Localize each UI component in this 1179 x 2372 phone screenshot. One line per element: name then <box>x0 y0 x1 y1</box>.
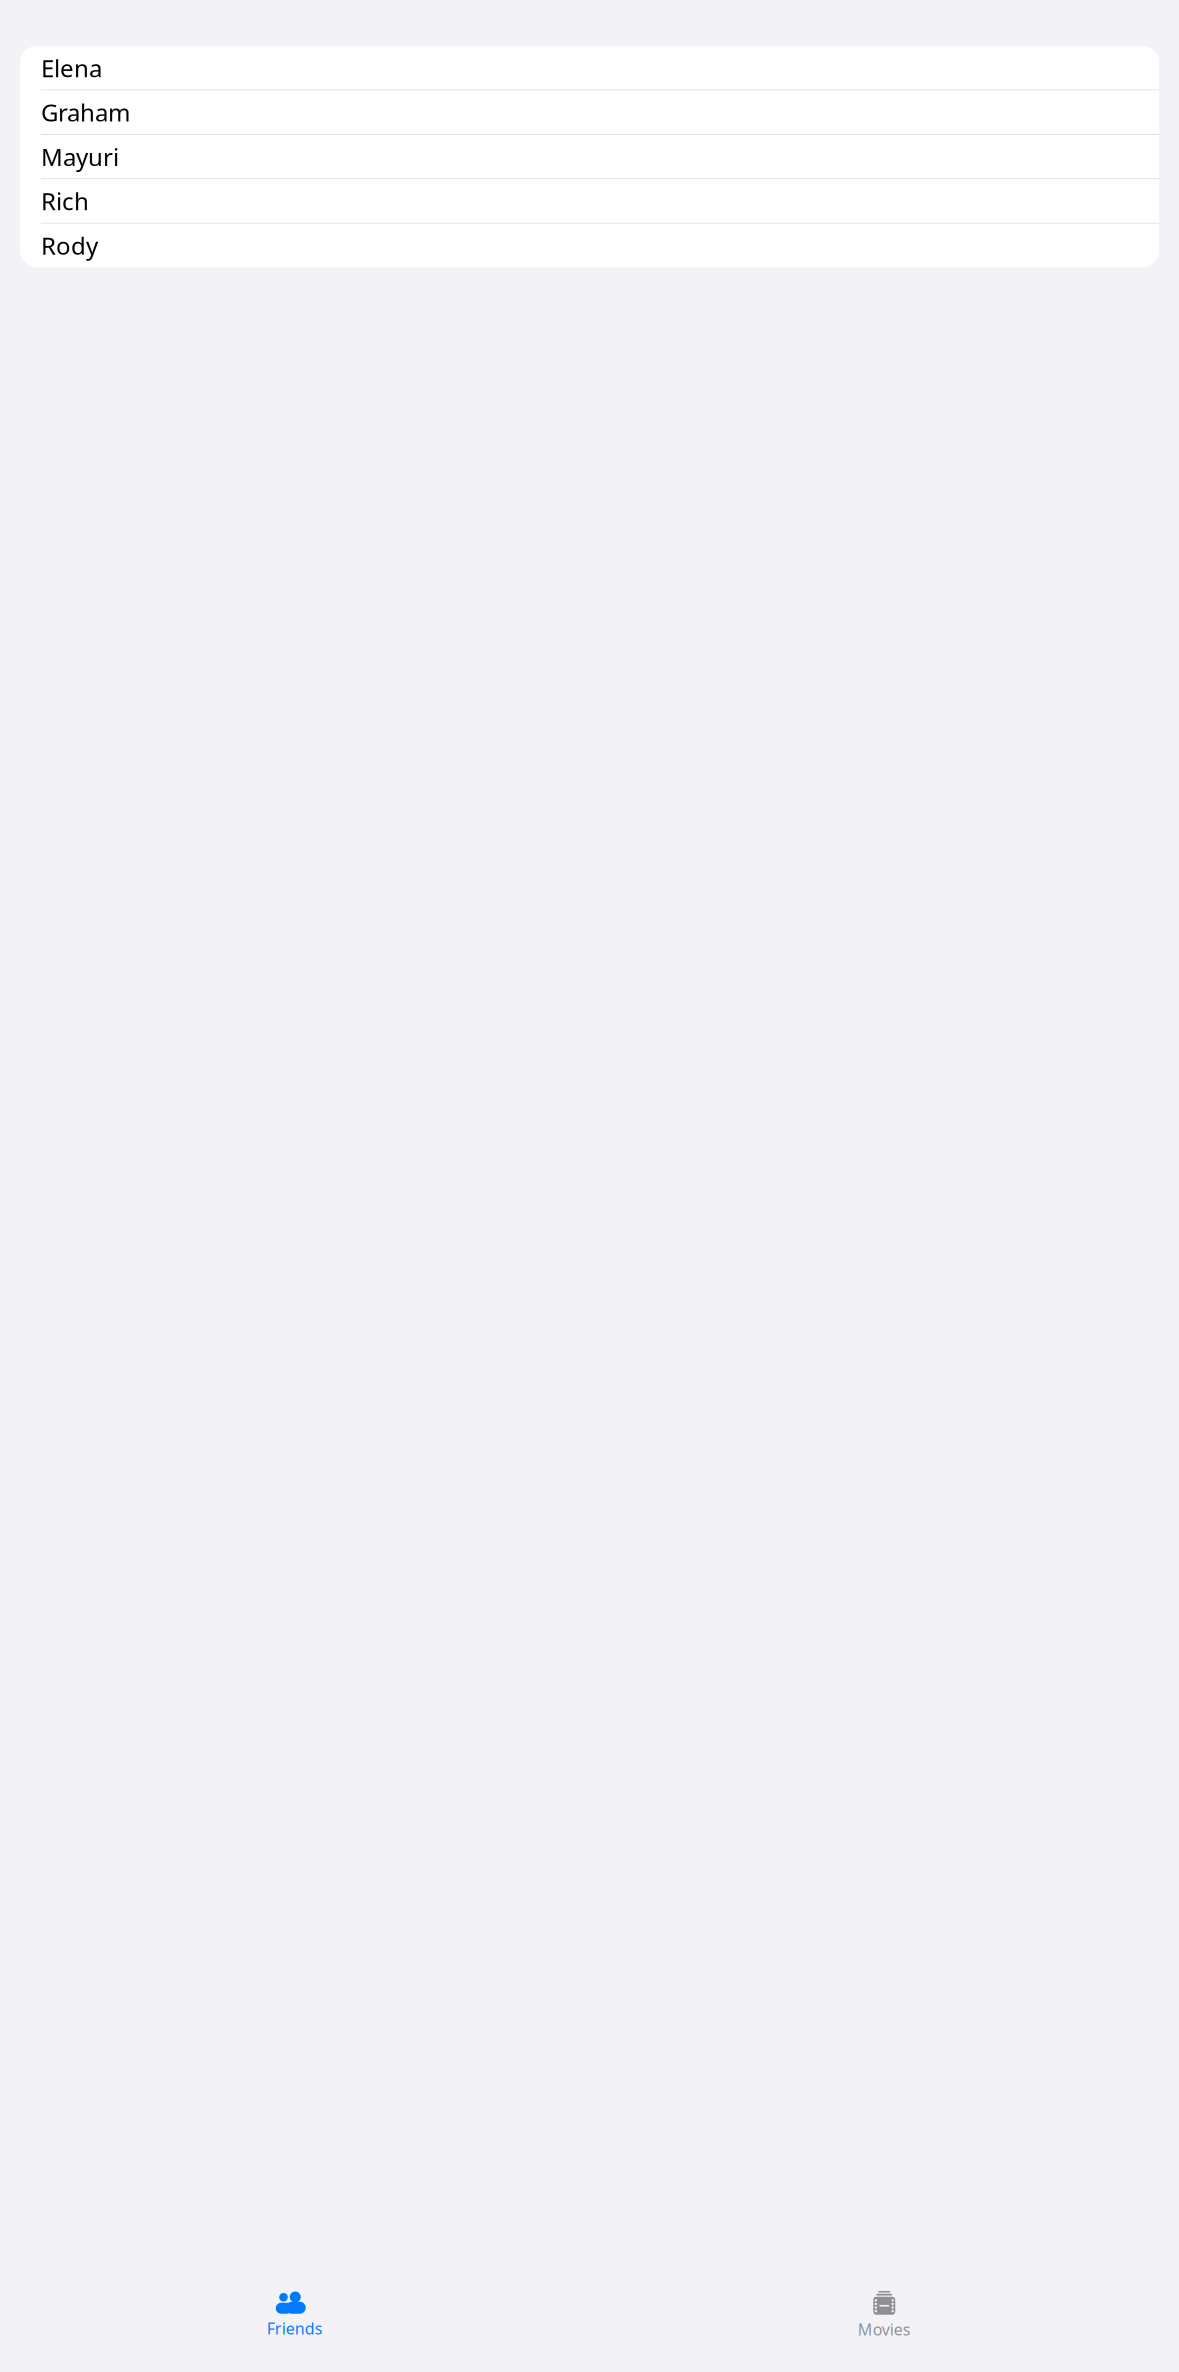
staticText: Graham <box>41 96 130 128</box>
staticText: Friends <box>267 2318 323 2339</box>
staticText: Mayuri <box>41 141 119 173</box>
button[interactable]: Mayuri <box>20 135 1159 179</box>
staticText: Elena <box>41 52 102 84</box>
button[interactable]: Rody <box>20 224 1159 267</box>
button[interactable]: Graham <box>20 90 1159 135</box>
button[interactable]: Movies <box>589 2284 1179 2346</box>
staticText: Rody <box>41 229 98 261</box>
staticText: Rich <box>41 185 89 217</box>
staticText: Movies <box>858 2319 911 2340</box>
button[interactable]: Elena <box>20 46 1159 90</box>
button[interactable]: Rich <box>20 179 1159 224</box>
button[interactable]: Friends <box>0 2285 589 2345</box>
